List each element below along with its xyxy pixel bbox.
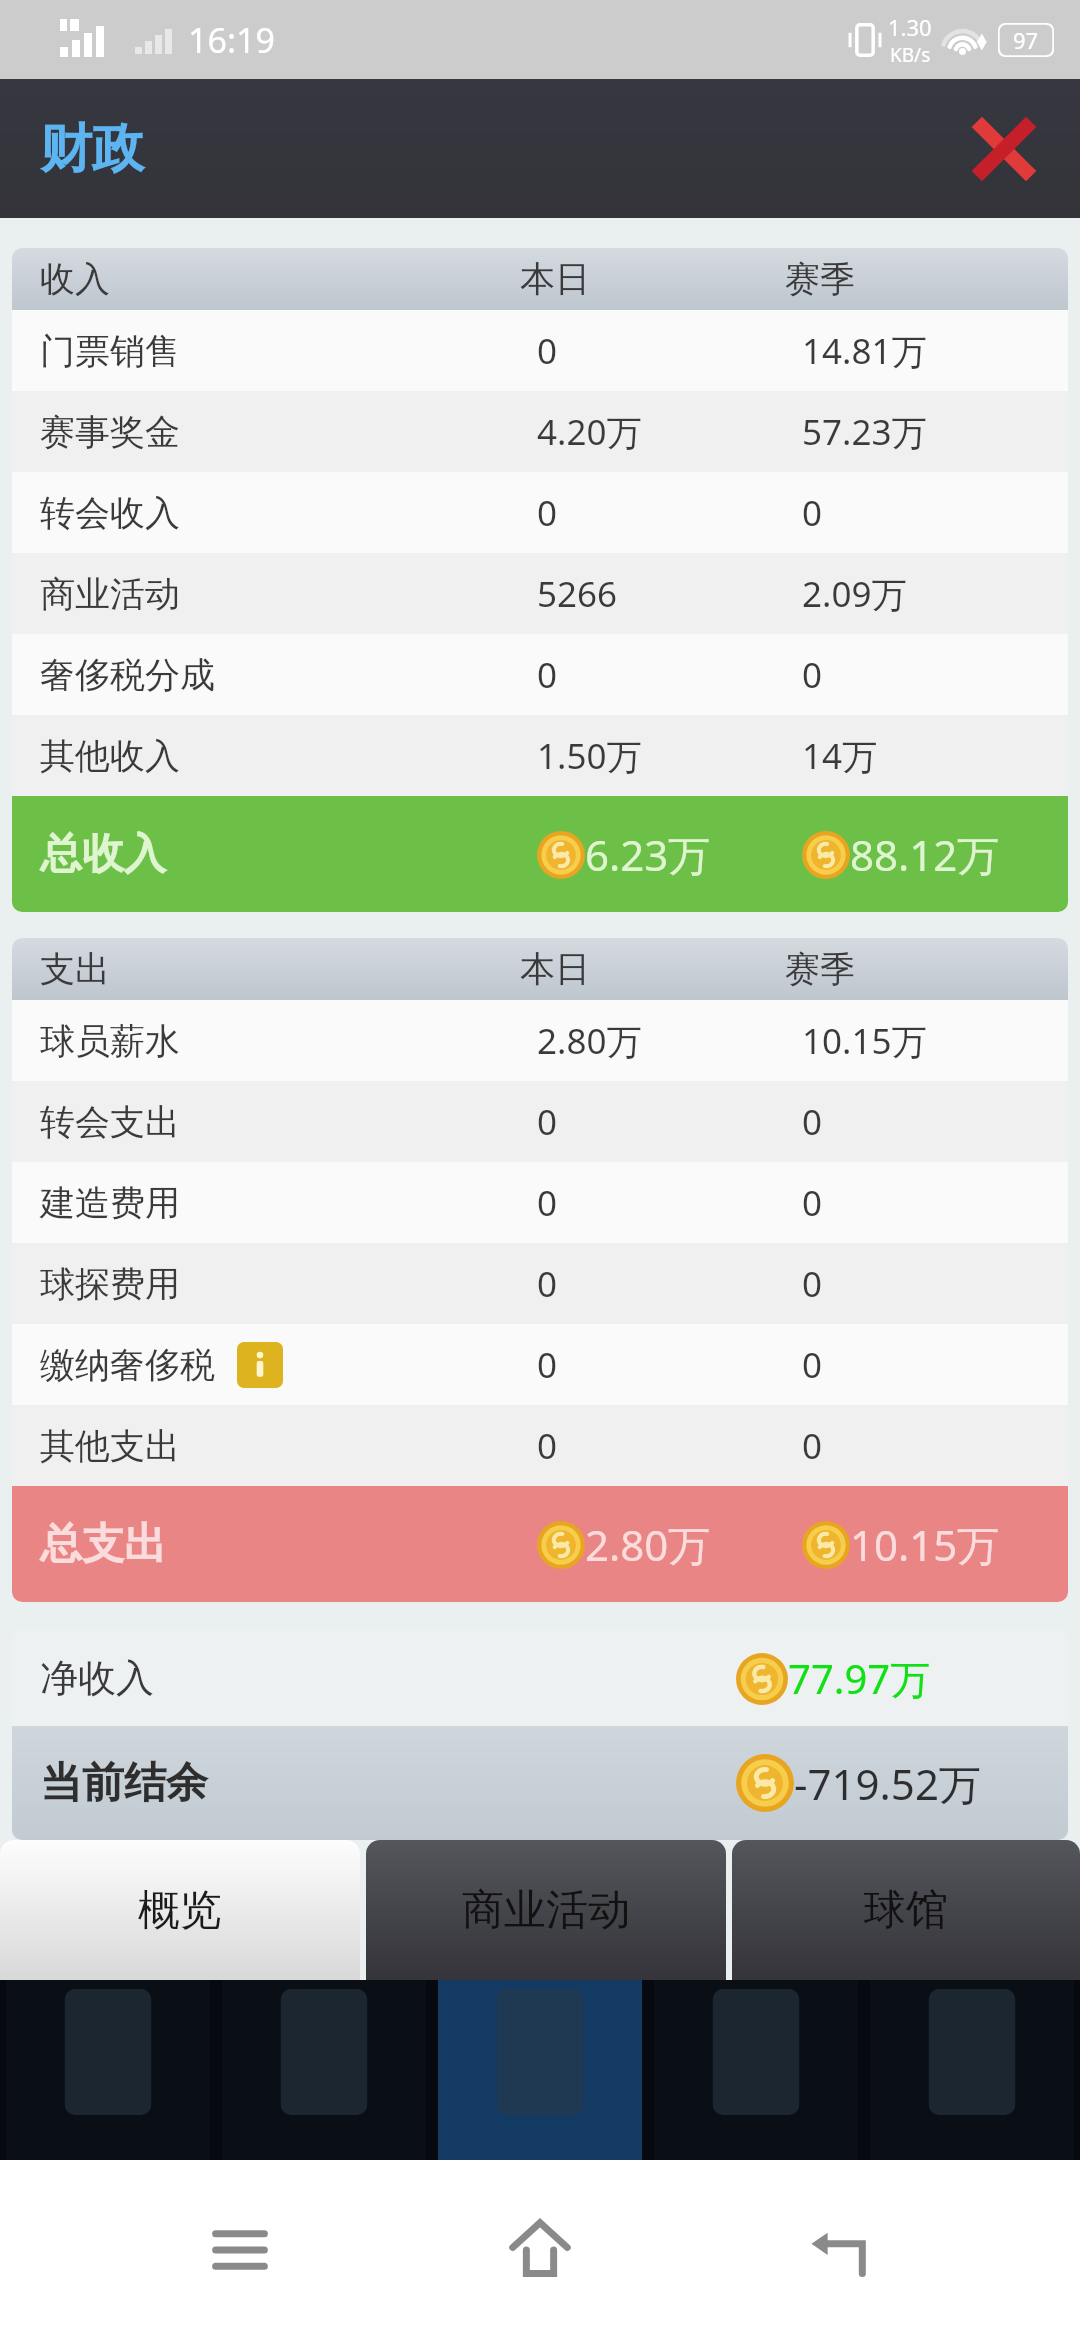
button[interactable]: Home [480,2190,600,2310]
staticText: 5266 [537,570,802,618]
staticText: 总支出 [40,1518,537,1571]
staticText: 本日 [520,257,785,301]
staticText: 1.30 [888,12,932,42]
button[interactable]: 转会收入 [12,472,1068,553]
staticText: 0 [537,651,802,699]
staticText: 10.15万 [802,1017,927,1065]
staticText: 商业活动 [40,572,180,616]
staticText: 0 [537,1341,802,1389]
staticText: 4.20万 [537,408,802,456]
staticText: 总收入 [40,828,537,881]
staticText: 其他支出 [40,1424,180,1468]
staticText: 建造费用 [40,1181,180,1225]
staticText: -719.52万 [794,1755,981,1812]
staticText: 当前结余 [40,1757,736,1810]
staticText: 0 [802,1422,823,1470]
button[interactable]: 门票销售 [12,310,1068,391]
staticText: 球探费用 [40,1262,180,1306]
button[interactable]: 当前结余 [12,1726,1068,1840]
staticText: 0 [802,489,823,537]
staticText: 赛季 [785,257,855,301]
staticText: 0 [802,1260,823,1308]
staticText: 6.23万 [585,826,711,883]
staticText: 财政 [40,116,144,182]
staticText: 收入 [40,257,520,301]
staticText: 0 [537,1260,802,1308]
staticText: 1.50万 [537,732,802,780]
staticText: 10.15万 [850,1516,1000,1573]
button[interactable]: 转会支出 [12,1081,1068,1162]
staticText: 缴纳奢侈税 [40,1343,215,1387]
button[interactable]: 商业活动 [366,1840,726,1980]
staticText: 0 [802,1179,823,1227]
staticText: 2.80万 [585,1516,711,1573]
button[interactable]: 其他收入 [12,715,1068,796]
staticText: 商业活动 [462,1884,630,1937]
staticText: 门票销售 [40,329,180,373]
staticText: 88.12万 [850,826,1000,883]
staticText: 14.81万 [802,327,927,375]
staticText: 其他收入 [40,734,180,778]
button[interactable]: 球探费用 [12,1243,1068,1324]
button[interactable]: 总支出 [12,1486,1068,1602]
staticText: 净收入 [40,1654,736,1702]
button[interactable]: 球员薪水 [12,1000,1068,1081]
staticText: 0 [537,327,802,375]
staticText: 2.80万 [537,1017,802,1065]
button[interactable]: 总收入 [12,796,1068,912]
staticText: 14万 [802,732,878,780]
button[interactable]: 缴纳奢侈税 [12,1324,1068,1405]
staticText: 16:19 [188,17,275,63]
button[interactable]: 其他支出 [12,1405,1068,1486]
button[interactable]: 商业活动 [12,553,1068,634]
staticText: 赛事奖金 [40,410,180,454]
staticText: 概览 [138,1884,222,1937]
button[interactable]: 赛事奖金 [12,391,1068,472]
staticText: 0 [537,1098,802,1146]
staticText: 0 [537,1422,802,1470]
staticText: 0 [802,651,823,699]
button[interactable]: 净收入 [12,1630,1068,1726]
staticText: 本日 [520,947,785,991]
button[interactable]: 建造费用 [12,1162,1068,1243]
button[interactable]: Info [237,1342,283,1388]
button[interactable]: Recent apps [180,2190,300,2310]
staticText: 转会支出 [40,1100,180,1144]
button[interactable]: 概览 [0,1840,360,1980]
staticText: 97 [1013,25,1039,55]
button[interactable]: 球馆 [732,1840,1080,1980]
staticText: 57.23万 [802,408,927,456]
staticText: 2.09万 [802,570,907,618]
staticText: 77.97万 [788,1651,931,1706]
staticText: 转会收入 [40,491,180,535]
staticText: 0 [537,1179,802,1227]
staticText: 0 [802,1098,823,1146]
button[interactable]: 奢侈税分成 [12,634,1068,715]
staticText: 0 [537,489,802,537]
staticText: 球馆 [864,1884,948,1937]
button[interactable]: Close [956,101,1052,197]
staticText: 奢侈税分成 [40,653,215,697]
staticText: 0 [802,1341,823,1389]
staticText: KB/s [890,42,931,68]
staticText: 球员薪水 [40,1019,180,1063]
staticText: 赛季 [785,947,855,991]
staticText: 支出 [40,947,520,991]
button[interactable]: Back [780,2190,900,2310]
